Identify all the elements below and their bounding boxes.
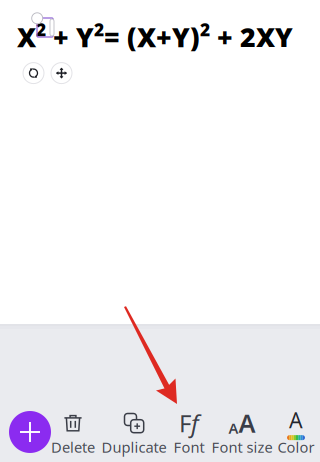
button[interactable]: Delete: [38, 409, 108, 455]
button[interactable]: A: [261, 409, 320, 455]
staticText: AA: [228, 406, 255, 440]
button[interactable]: Rotate: [23, 63, 44, 84]
staticText: A: [289, 406, 303, 434]
staticText: Delete: [51, 437, 95, 457]
button[interactable]: Move: [51, 63, 72, 84]
staticText: Ff: [179, 407, 199, 439]
staticText: X2 + Y2= (X+Y)2 + 2XY: [17, 18, 293, 55]
staticText: Font: [173, 437, 204, 457]
button[interactable]: Ff: [154, 409, 224, 455]
button[interactable]: Add: [9, 411, 51, 453]
staticText: Duplicate: [101, 437, 166, 457]
button[interactable]: Duplicate: [99, 409, 169, 455]
button[interactable]: AA: [207, 409, 277, 455]
staticText: Font size: [211, 437, 272, 457]
staticText: Color: [277, 437, 314, 457]
